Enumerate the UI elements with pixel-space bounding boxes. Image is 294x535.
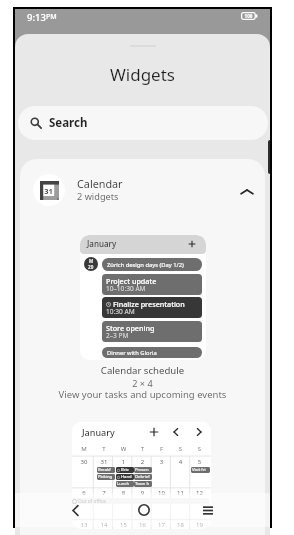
staticText: 12 [190, 489, 209, 497]
button[interactable] [20, 159, 265, 221]
staticText: Lunch [117, 481, 129, 487]
staticText: 2 [133, 458, 152, 466]
staticText: 31 [94, 458, 114, 466]
staticText: 10–10:30 AM [106, 284, 146, 293]
other: Battery full [241, 12, 258, 20]
staticText: 31 [39, 186, 58, 196]
staticText: Out of office [78, 498, 106, 504]
staticText: Brie [121, 467, 129, 473]
staticText: 2 × 4 [20, 377, 265, 390]
staticText: 20 [88, 264, 94, 270]
staticText: 15 [114, 521, 133, 529]
staticText: 3 [152, 458, 171, 466]
button[interactable]: Previous month [171, 427, 181, 437]
staticText: T [94, 445, 114, 453]
staticText: View your tasks and upcoming events [20, 388, 265, 401]
staticText: Store opening [106, 323, 155, 333]
staticText: S [190, 445, 209, 453]
staticText: 100 [240, 13, 257, 19]
staticText: Project update [106, 276, 157, 286]
staticText: 10 [152, 489, 171, 497]
staticText: 2 widgets [77, 190, 119, 203]
staticText: Finalize presentation [113, 299, 185, 309]
staticText: T [133, 445, 152, 453]
staticText: S [171, 445, 190, 453]
button[interactable]: January [72, 422, 211, 529]
staticText: 17 [152, 521, 171, 529]
staticText: Debrief [135, 474, 150, 480]
staticText: W [114, 445, 133, 453]
button[interactable]: Home [131, 493, 157, 527]
staticText: F [152, 445, 171, 453]
staticText: M [74, 445, 94, 453]
staticText: PM [46, 12, 57, 22]
staticText: Calendar schedule [20, 364, 265, 377]
staticText: Breakf [98, 467, 111, 473]
staticText: Visit fri [192, 467, 206, 473]
staticText: 4 [171, 458, 190, 466]
button[interactable]: Collapse [239, 184, 255, 200]
button[interactable]: Recent apps [195, 493, 221, 527]
staticText: 11 [171, 489, 190, 497]
staticText: January [82, 426, 115, 438]
staticText: 6 [74, 489, 94, 497]
staticText: 14 [94, 521, 114, 529]
staticText: 9:13 [27, 11, 46, 24]
staticText: Dinner with Gloria [107, 349, 157, 357]
staticText: 8 [114, 489, 133, 497]
staticText: January [87, 238, 117, 249]
staticText: 7 [94, 489, 114, 497]
button[interactable]: Back [62, 493, 88, 527]
button[interactable]: Search [18, 106, 268, 140]
staticText: 30 [74, 458, 94, 466]
staticText: 13 [74, 521, 94, 529]
staticText: 19 [190, 521, 209, 529]
staticText: 9 [133, 489, 152, 497]
staticText: M [89, 258, 94, 264]
staticText: Hand [121, 474, 132, 480]
staticText: Widgets [15, 63, 270, 86]
staticText: Picking [98, 474, 113, 480]
other: Add event [149, 427, 159, 437]
staticText: 16 [133, 521, 152, 529]
button[interactable]: Next month [194, 427, 204, 437]
staticText: Search [49, 115, 88, 131]
staticText: 18 [171, 521, 190, 529]
other: Add event [188, 240, 196, 248]
staticText: Zürich design days (Day 1/2) [107, 261, 184, 269]
staticText: 2–3 PM [106, 331, 129, 340]
staticText: Calendar [77, 176, 123, 191]
staticText: Town h [135, 481, 150, 487]
button[interactable]: January [80, 235, 206, 360]
staticText: 5 [190, 458, 209, 466]
staticText: 1 [114, 458, 133, 466]
staticText: Presen [135, 467, 149, 473]
staticText: 10:30 AM [106, 307, 135, 316]
